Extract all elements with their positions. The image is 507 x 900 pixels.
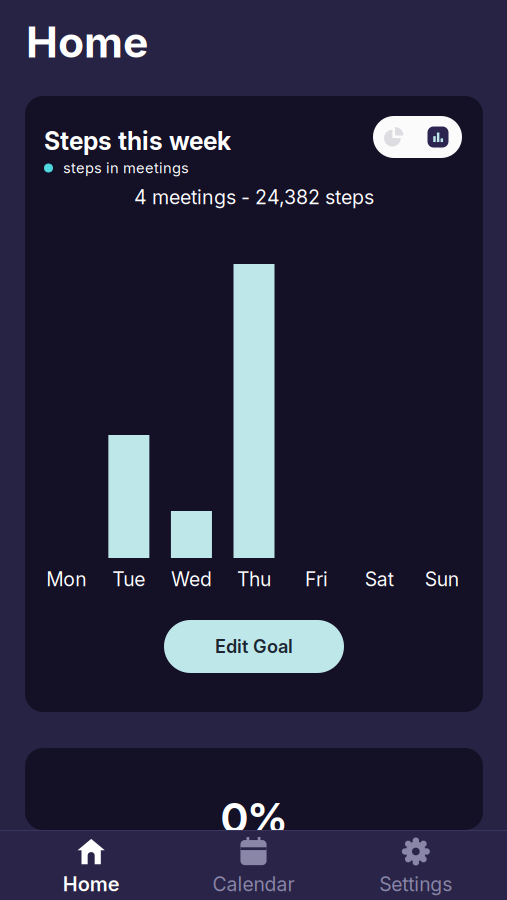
staticText: Settings (379, 873, 452, 896)
button[interactable]: Calendar (172, 831, 335, 900)
staticText: Mon (46, 568, 86, 591)
staticText: Sat (365, 568, 394, 591)
staticText: Home (63, 872, 120, 896)
staticText: Tue (112, 568, 145, 591)
staticText: Calendar (212, 873, 294, 896)
staticText: Home (26, 16, 148, 68)
button[interactable]: Chart type (373, 116, 462, 158)
staticText: Thu (237, 568, 271, 591)
staticText: Fri (305, 568, 328, 591)
button[interactable]: Edit Goal (164, 620, 344, 673)
staticText: Wed (171, 568, 212, 591)
staticText: Sun (425, 568, 459, 591)
staticText: Steps this week (44, 126, 231, 156)
button[interactable]: Settings (335, 831, 497, 900)
staticText: 4 meetings - 24,382 steps (134, 185, 374, 209)
button[interactable]: Home (10, 831, 172, 900)
staticText: Edit Goal (215, 635, 293, 657)
staticText: steps in meetings (63, 159, 189, 177)
staticText: 0% (221, 793, 287, 843)
